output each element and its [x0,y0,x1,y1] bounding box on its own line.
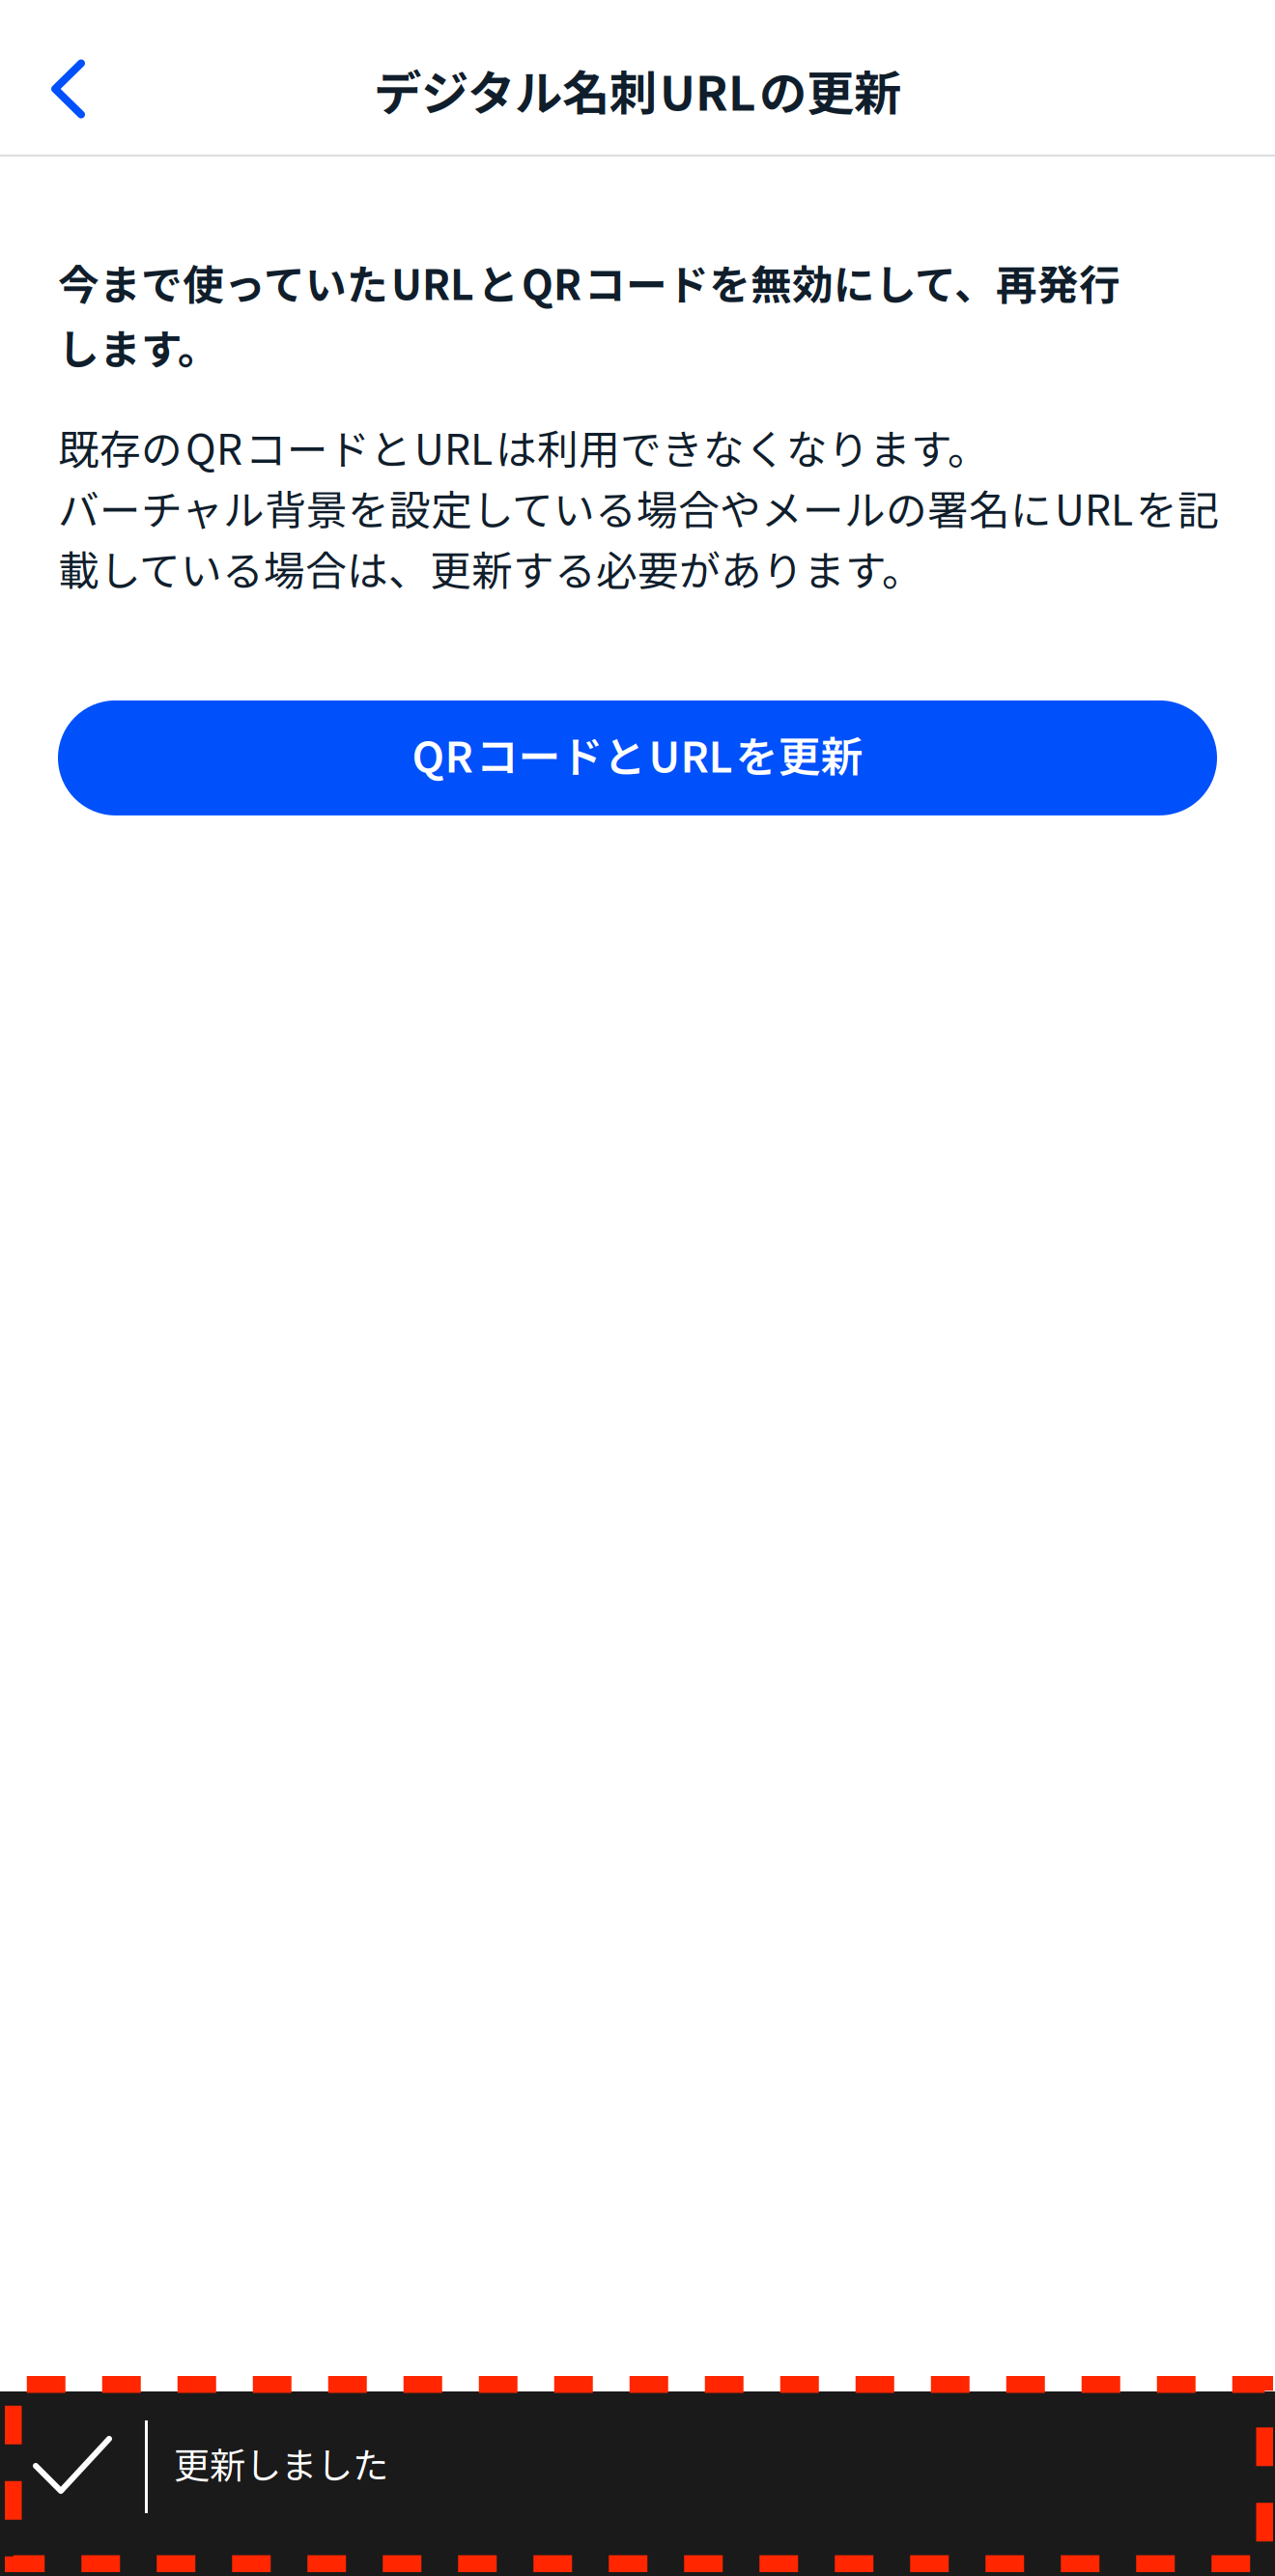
button[interactable]: 戻る [10,31,126,147]
staticText: 更新しました [174,2437,388,2489]
staticText: 既存の QR コードと URL は利用できなくなります。 バーチャル背景を設定し… [58,417,1219,598]
staticText: QR コードと URL を更新 [412,723,863,785]
staticText: デジタル名刺 URL の更新 [374,55,901,124]
staticText: 今まで使っていた URL と QR コードを無効にして、再発行 します。 [58,252,1120,376]
button[interactable]: QR コードと URL を更新 [58,700,1217,815]
